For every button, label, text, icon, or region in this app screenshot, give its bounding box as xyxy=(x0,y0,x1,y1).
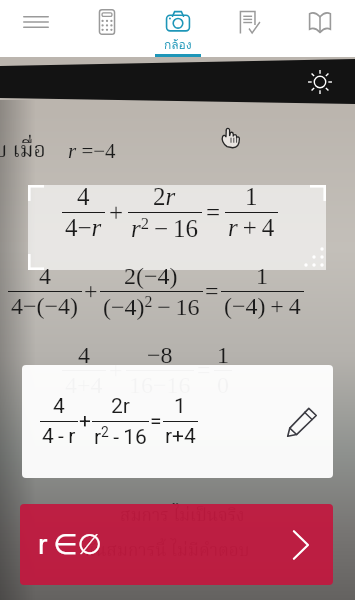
staticText: = xyxy=(206,199,221,227)
other: Brightness xyxy=(307,69,333,95)
button[interactable]: Edit xyxy=(285,405,319,439)
staticText: บ เมื่อ xyxy=(0,135,46,169)
staticText: 4 xyxy=(39,263,51,290)
staticText: r ∈∅ xyxy=(38,528,102,561)
staticText: r + 4 xyxy=(228,214,275,242)
staticText: = xyxy=(150,409,162,434)
staticText: 4 xyxy=(77,183,90,211)
staticText: + xyxy=(84,278,98,305)
staticText: สมการ ไม่เป็นจริง xyxy=(120,503,245,530)
staticText: r+4 xyxy=(165,424,196,449)
staticText: 4 xyxy=(53,394,65,419)
staticText: = xyxy=(205,278,219,305)
staticText: 2r xyxy=(111,394,130,419)
staticText: + xyxy=(109,357,123,384)
staticText: (−4) + 4 xyxy=(224,293,301,320)
staticText: (−4)2 − 16 xyxy=(103,293,200,320)
other: Next step xyxy=(284,530,314,560)
staticText: 4 xyxy=(78,342,90,369)
staticText: นั่นสมการนี้ ไม่มีคำตอบ xyxy=(84,538,250,565)
staticText: 16−16 xyxy=(129,372,191,399)
button[interactable]: camera xyxy=(142,0,213,57)
staticText: = xyxy=(197,357,211,384)
staticText: + xyxy=(79,409,91,434)
staticText: 2(−4) xyxy=(124,263,178,290)
staticText: −8 xyxy=(147,342,173,369)
staticText: 1 xyxy=(174,394,186,419)
staticText: r2 - 16 xyxy=(94,424,147,449)
staticText: 4−(−4) xyxy=(11,293,79,320)
button[interactable]: doc xyxy=(213,0,284,57)
staticText: r =−4 xyxy=(68,139,116,162)
staticText: r2 − 16 xyxy=(131,214,199,242)
staticText: 2r xyxy=(153,183,176,211)
button[interactable]: r ∈∅ xyxy=(20,504,333,585)
staticText: 4 - r xyxy=(42,424,76,449)
staticText: 1 xyxy=(217,342,229,369)
staticText: 4−r xyxy=(65,214,102,242)
button[interactable]: calc xyxy=(71,0,142,57)
staticText: + xyxy=(109,199,124,227)
button[interactable]: book xyxy=(284,0,355,57)
staticText: กล้อง xyxy=(164,35,192,54)
staticText: 1 xyxy=(245,183,258,211)
button[interactable]: menu xyxy=(0,0,71,57)
button[interactable]: 4 xyxy=(22,365,333,478)
staticText: 1 xyxy=(256,263,268,290)
